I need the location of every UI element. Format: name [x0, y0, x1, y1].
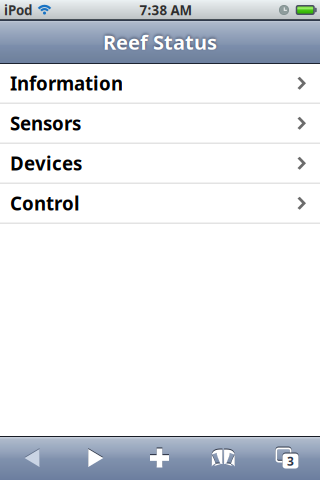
- button[interactable]: Back: [10, 436, 54, 480]
- button[interactable]: Forward: [74, 436, 118, 480]
- button[interactable]: Sensors: [0, 104, 320, 144]
- staticText: Sensors: [10, 111, 81, 136]
- staticText: iPod: [4, 1, 32, 19]
- staticText: Control: [10, 191, 80, 216]
- staticText: 3: [287, 453, 294, 469]
- staticText: Devices: [10, 151, 82, 176]
- staticText: Information: [10, 71, 123, 96]
- button[interactable]: Devices: [0, 144, 320, 184]
- button[interactable]: Bookmarks: [201, 436, 245, 480]
- staticText: 7:38 AM: [139, 1, 192, 19]
- button[interactable]: Add bookmark: [137, 436, 181, 480]
- button[interactable]: Control: [0, 184, 320, 224]
- button[interactable]: Pages, 3 open: [265, 436, 309, 480]
- staticText: Reef Status: [103, 29, 217, 55]
- button[interactable]: Information: [0, 64, 320, 104]
